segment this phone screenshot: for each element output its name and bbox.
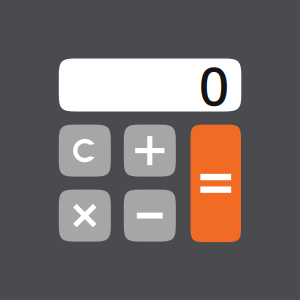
button[interactable]: Subtract xyxy=(124,190,176,242)
staticText: 0 xyxy=(199,50,230,120)
button[interactable]: Multiply xyxy=(59,190,111,242)
button[interactable]: Equals xyxy=(190,125,241,242)
button[interactable]: Add xyxy=(124,125,176,177)
button[interactable]: Clear xyxy=(59,125,111,177)
